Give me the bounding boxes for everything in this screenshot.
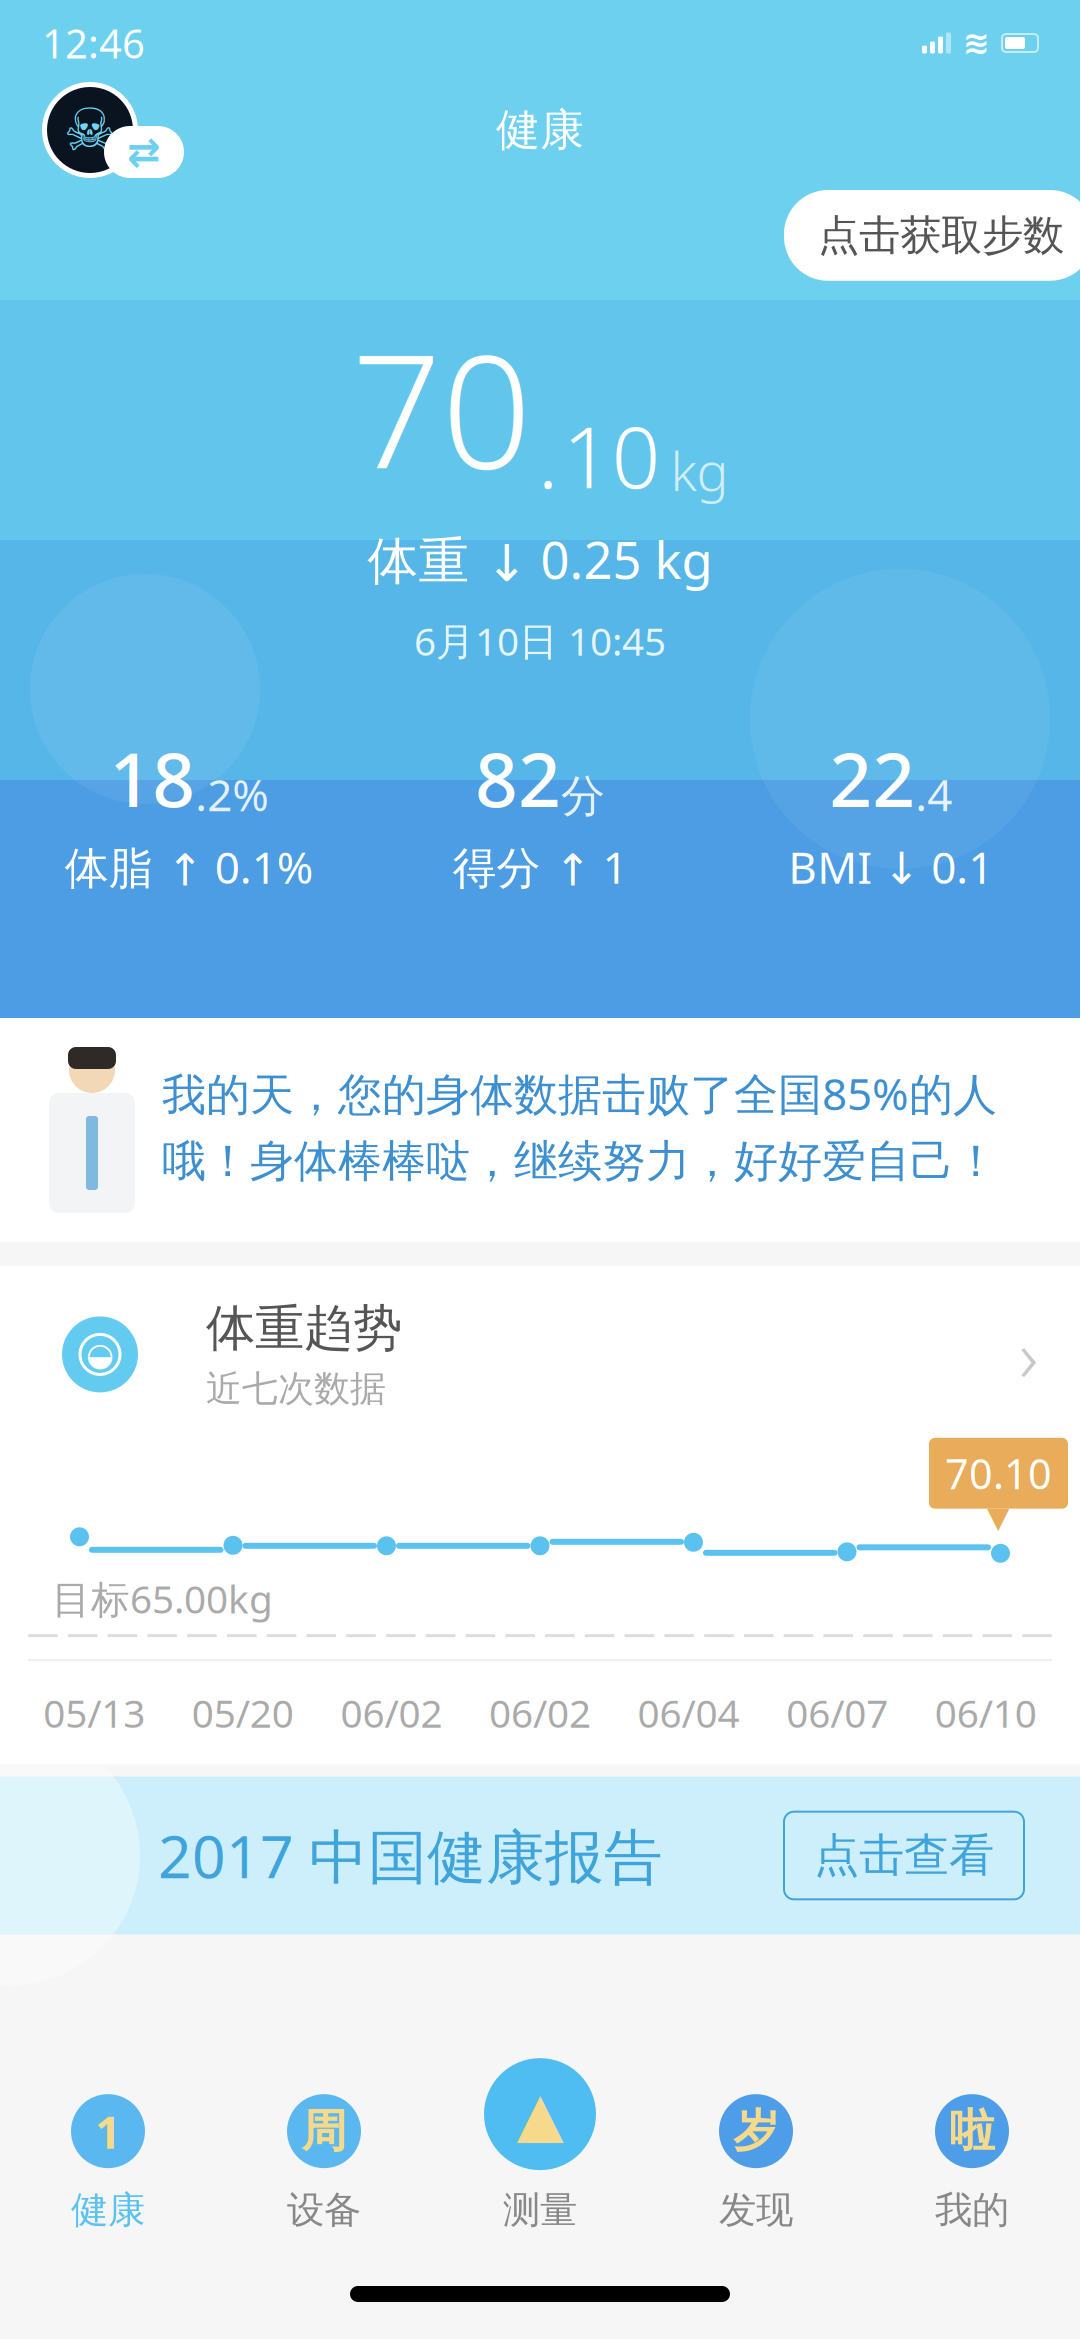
staticText: 12:46 — [42, 16, 145, 69]
button[interactable]: 啦 — [864, 2083, 1080, 2233]
button[interactable]: 1 — [0, 2083, 216, 2233]
staticText: 啦 — [949, 2103, 994, 2159]
staticText: 1 — [95, 2101, 121, 2161]
button[interactable]: ◒ — [0, 1266, 1080, 1423]
staticText: 设备 — [287, 2187, 361, 2233]
staticText: 点击获取步数 — [818, 210, 1064, 261]
staticText: ☠ — [63, 97, 116, 163]
staticText: ◒ — [86, 1336, 114, 1372]
staticText: 82 — [475, 728, 561, 827]
staticText: 10 — [562, 398, 660, 512]
staticText: 近七次数据 — [206, 1367, 386, 1411]
staticText: kg — [670, 435, 728, 506]
staticText: 06/04 — [638, 1687, 740, 1738]
staticText: 体重趋势 — [206, 1298, 402, 1359]
staticText: ⇄ — [127, 129, 161, 175]
staticText: 06/10 — [935, 1687, 1037, 1738]
staticText: .4 — [915, 765, 952, 823]
staticText: 体重 ↓ 0.25 kg — [367, 526, 712, 593]
staticText: 06/07 — [786, 1687, 888, 1738]
staticText: 测量 — [503, 2187, 577, 2233]
staticText: 健康 — [71, 2187, 145, 2233]
staticText: . — [537, 398, 558, 512]
staticText: 岁 — [733, 2103, 778, 2159]
staticText: 健康 — [496, 103, 584, 157]
staticText: 点击查看 — [814, 1828, 994, 1883]
staticText: .2% — [195, 765, 269, 823]
staticText: 06/02 — [489, 1687, 591, 1738]
button[interactable]: 周 — [216, 2083, 432, 2233]
staticText: 我的 — [935, 2187, 1009, 2233]
staticText: 周 — [301, 2103, 346, 2159]
staticText: BMI ↓ 0.1 — [788, 837, 993, 896]
staticText: › — [1019, 1307, 1038, 1402]
button[interactable]: ▲ — [432, 2055, 648, 2233]
button[interactable]: 点击获取步数 — [784, 190, 1081, 281]
staticText: 05/20 — [192, 1687, 294, 1738]
staticText: 发现 — [719, 2187, 793, 2233]
staticText: 2017 中国健康报告 — [158, 1817, 663, 1894]
staticText: 70.10 — [945, 1446, 1052, 1501]
staticText: 05/13 — [43, 1687, 145, 1738]
staticText: 目标65.00kg — [52, 1573, 273, 1624]
staticText: 06/02 — [340, 1687, 442, 1738]
staticText: ▼ — [987, 1501, 1010, 1534]
button[interactable]: 2017 中国健康报告 — [0, 1776, 1080, 1934]
button[interactable]: Profile — [42, 82, 138, 178]
staticText: 得分 ↑ 1 — [452, 837, 627, 896]
staticText: 体脂 ↑ 0.1% — [65, 837, 314, 896]
staticText: ≋ — [963, 25, 990, 61]
staticText: 22 — [829, 728, 915, 827]
staticText: 70 — [351, 303, 531, 512]
staticText: 6月10日 10:45 — [414, 615, 666, 666]
button[interactable]: 岁 — [648, 2083, 864, 2233]
staticText: 我的天，您的身体数据击败了全国85%的人哦！身体棒棒哒，继续努力，好好爱自己！ — [162, 1064, 998, 1188]
button[interactable]: Switch user — [104, 126, 184, 178]
staticText: 分 — [561, 769, 605, 823]
staticText: ▲ — [516, 2079, 563, 2149]
staticText: 18 — [109, 728, 195, 827]
